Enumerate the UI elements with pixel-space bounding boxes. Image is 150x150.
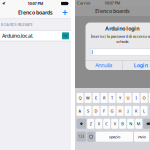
button[interactable]: L [141,106,148,116]
button[interactable]: F [101,106,108,116]
staticText: S [87,108,89,113]
button[interactable]: A [77,106,84,116]
button[interactable]: T [109,93,116,103]
button[interactable]: invio [134,132,149,142]
staticText: scheda [116,39,128,44]
button[interactable]: X [95,119,102,129]
button[interactable]: O [141,93,148,103]
button[interactable]: Arduino.local. [0,31,71,41]
staticText: M [137,121,141,126]
button[interactable]: R [101,93,108,103]
staticText: H [119,108,122,113]
button[interactable]: Next keyboard [87,132,95,142]
staticText: Y [119,95,121,101]
staticText: Carrier [77,0,91,6]
button[interactable]: W [85,93,92,103]
staticText: I [136,95,137,101]
staticText: E [95,95,97,101]
button[interactable]: D [93,106,100,116]
button[interactable]: K [133,106,140,116]
button[interactable]: N [127,119,134,129]
staticText: spazio [109,134,120,139]
staticText: K [135,108,137,113]
button[interactable]: V [111,119,118,129]
staticText: J [128,108,129,113]
staticText: Z [90,121,92,126]
staticText: D [95,108,98,113]
button[interactable]: U [125,93,132,103]
staticText: F [103,108,105,113]
staticText: A [79,108,82,113]
button[interactable]: Annulla [86,60,122,70]
staticText: BOARDS RILEVATE [0,22,32,27]
staticText: V [114,121,116,126]
staticText: 10:07 PM [104,0,120,6]
staticText: Arduino login [105,25,139,32]
staticText: Inserisci la password di accesso alla [91,34,150,39]
staticText: B [121,121,124,126]
staticText: W [86,95,90,101]
staticText: invio [137,134,145,139]
staticText: T [111,95,113,101]
staticText: G [111,108,114,113]
staticText: Annulla [95,62,112,69]
staticText: C [105,121,108,126]
staticText: U [127,95,130,101]
button[interactable]: Q [77,93,84,103]
button[interactable]: Add board [62,9,68,15]
staticText: X [98,121,100,126]
staticText: Q [79,95,82,101]
button[interactable]: E [93,93,100,103]
button[interactable]: Numbers [77,132,86,142]
staticText: Elenco boards [95,7,130,15]
button[interactable]: G [109,106,116,116]
staticText: Login [134,62,148,69]
button[interactable]: S [85,106,92,116]
staticText: Elenco boards [18,9,53,16]
staticText: Arduino.local. [2,32,33,39]
button[interactable]: H [117,106,124,116]
staticText: L [143,108,145,113]
button[interactable]: B [119,119,126,129]
button[interactable]: J [125,106,132,116]
button[interactable]: Login [122,60,150,70]
button[interactable]: I [133,93,140,103]
staticText: 123 [78,135,84,138]
staticText: N [129,121,132,126]
button[interactable]: Delete [143,119,150,129]
button[interactable]: Z [87,119,94,129]
staticText: 10:07 PM [27,1,43,6]
staticText: R [103,95,105,101]
button[interactable]: Shift [77,119,86,129]
button[interactable]: spazio [96,132,133,142]
button[interactable]: C [103,119,110,129]
button[interactable]: M [135,119,142,129]
button[interactable]: Y [117,93,124,103]
staticText: O [143,95,146,101]
